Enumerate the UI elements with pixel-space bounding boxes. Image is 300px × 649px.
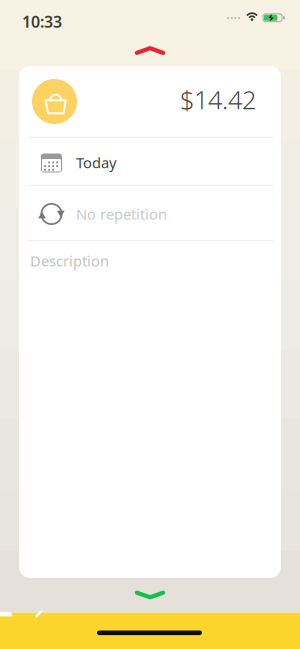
staticText: $14.42 bbox=[180, 83, 256, 116]
button[interactable]: Save bbox=[127, 583, 173, 607]
staticText: 10:33 bbox=[22, 11, 62, 32]
button[interactable]: Dismiss bbox=[127, 36, 173, 64]
button[interactable]: Category bbox=[32, 79, 77, 124]
button[interactable]: Description bbox=[19, 241, 281, 281]
button[interactable]: Today bbox=[19, 138, 281, 185]
staticText: Today bbox=[76, 153, 116, 172]
staticText: Description bbox=[30, 251, 109, 270]
staticText: No repetition bbox=[76, 204, 167, 224]
button[interactable]: $14.42 bbox=[180, 85, 256, 118]
button[interactable]: No repetition bbox=[19, 186, 281, 240]
